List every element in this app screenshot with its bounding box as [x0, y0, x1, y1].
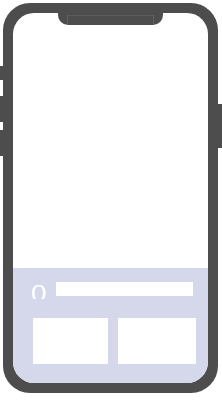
button[interactable]: Search — [30, 279, 48, 299]
staticText: Q — [31, 279, 47, 299]
